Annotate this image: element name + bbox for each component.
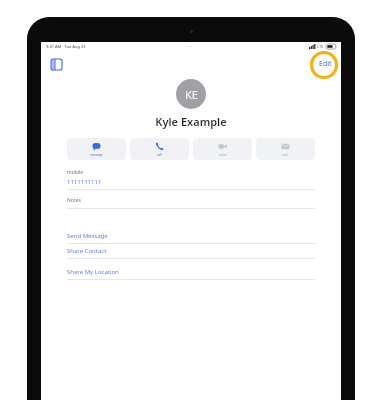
staticText: 9:41 AM Tue Aug 23 [46, 44, 86, 49]
button[interactable]: call [130, 138, 189, 160]
staticText: video [219, 153, 227, 157]
staticText: Share Contact [67, 247, 107, 255]
button[interactable]: message [67, 138, 126, 160]
button[interactable]: Show sidebar [48, 56, 64, 72]
staticText: Notes [67, 197, 81, 204]
button[interactable]: mobile [67, 169, 315, 186]
staticText: KE [185, 87, 198, 102]
staticText: mobile [67, 169, 84, 176]
staticText: Share My Location [67, 268, 119, 276]
staticText: LTE [317, 44, 324, 49]
staticText: 1111111111 [67, 178, 102, 186]
button[interactable]: Share My Location [67, 265, 315, 279]
button[interactable]: video [193, 138, 252, 160]
staticText: mail [282, 153, 289, 157]
staticText: Kyle Example [41, 114, 341, 129]
staticText: message [90, 153, 103, 157]
staticText: Edit [319, 59, 332, 69]
button[interactable]: mail [256, 138, 315, 160]
staticText: Send Message [67, 232, 108, 240]
button[interactable]: Share Contact [67, 244, 315, 258]
button[interactable]: Send Message [67, 229, 315, 243]
staticText: call [157, 153, 162, 157]
staticText: ··· [189, 44, 193, 49]
button[interactable]: Edit [316, 57, 335, 71]
